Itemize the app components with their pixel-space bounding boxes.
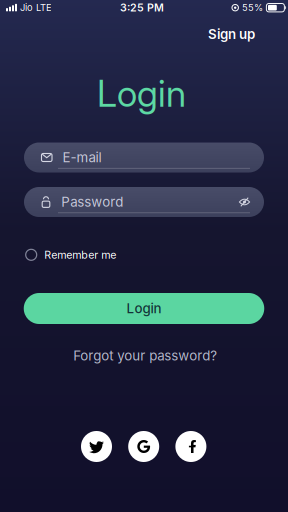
- button[interactable]: Remember me: [26, 249, 37, 260]
- staticText: Login: [126, 301, 161, 316]
- staticText: Forgot your password?: [73, 348, 217, 363]
- staticText: Login: [97, 72, 186, 115]
- staticText: Jio: [20, 2, 33, 13]
- staticText: 55%: [242, 2, 263, 13]
- button[interactable]: Forgot your password?: [73, 348, 217, 363]
- staticText: Password: [61, 194, 123, 210]
- button[interactable]: Login: [24, 293, 264, 324]
- staticText: 3:25 PM: [120, 1, 164, 14]
- staticText: LTE: [36, 2, 52, 13]
- button[interactable]: Sign in with Twitter: [81, 431, 112, 462]
- staticText: Sign up: [208, 26, 255, 42]
- staticText: Remember me: [44, 248, 116, 261]
- button[interactable]: Sign up: [208, 26, 255, 42]
- button[interactable]: Sign in with Google: [128, 431, 159, 462]
- button[interactable]: Sign in with Facebook: [175, 431, 206, 462]
- button[interactable]: Show password: [239, 197, 250, 207]
- staticText: E-mail: [62, 150, 101, 165]
